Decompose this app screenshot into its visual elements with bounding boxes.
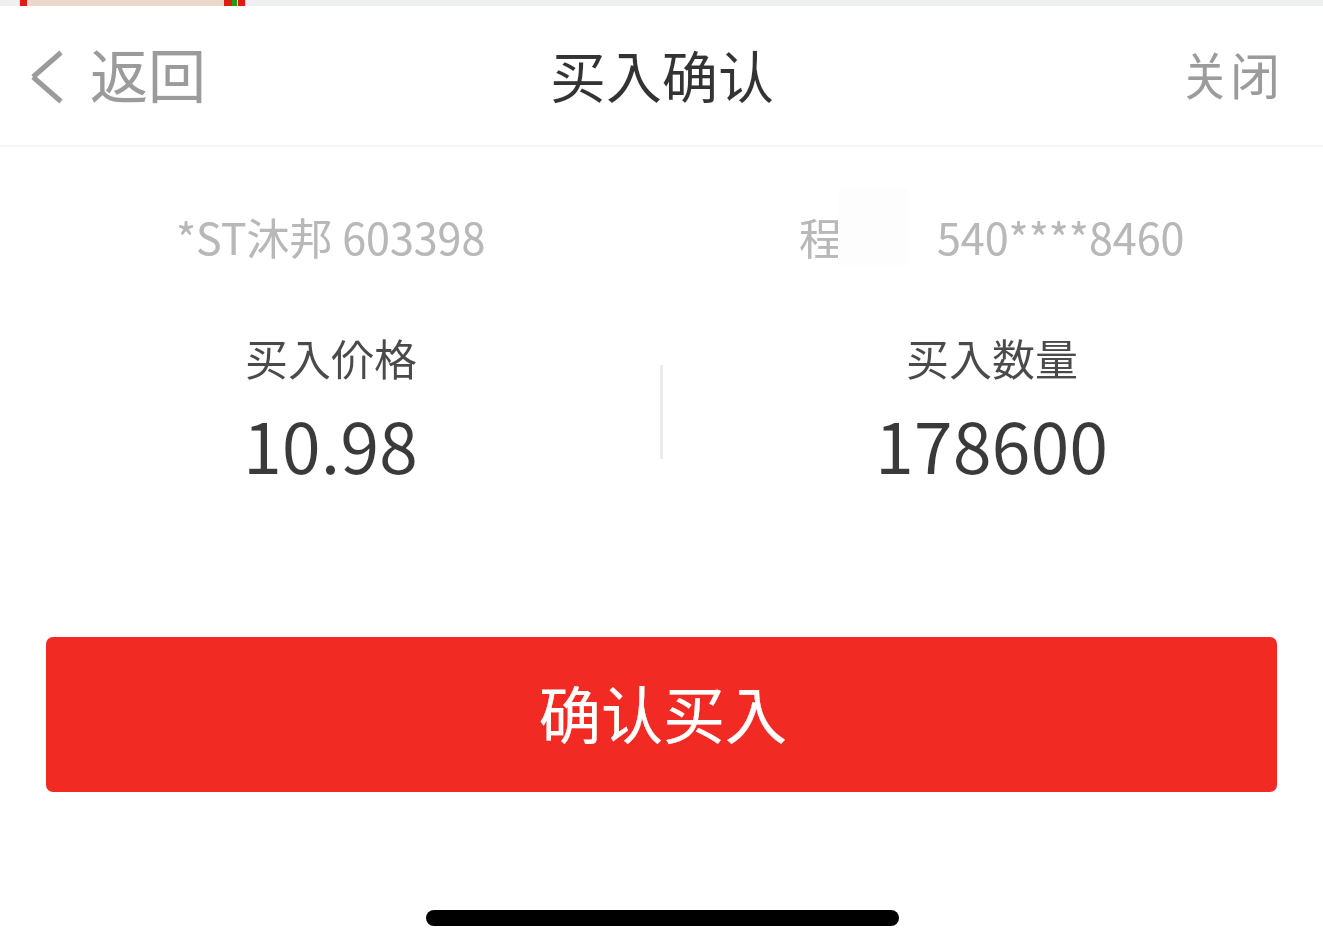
staticText: 178600 [875, 393, 1109, 494]
button[interactable]: 返回 Back [0, 9, 217, 145]
staticText: 买入数量 [906, 326, 1078, 388]
button[interactable]: 关闭 [1140, 9, 1323, 145]
staticText: 返回 [90, 31, 207, 115]
staticText: 10.98 [243, 393, 418, 494]
staticText: 买入确认 [550, 33, 774, 114]
button[interactable]: 确认买入 [46, 637, 1277, 792]
other: Back [20, 42, 64, 112]
staticText: 买入价格 [245, 326, 417, 388]
staticText: 540****8460 [937, 205, 1185, 267]
staticText: 确认买入 [539, 667, 788, 757]
staticText: 关闭 [1180, 37, 1280, 109]
staticText: *ST沐邦 603398 [176, 205, 486, 267]
staticText: 程 [799, 205, 842, 267]
